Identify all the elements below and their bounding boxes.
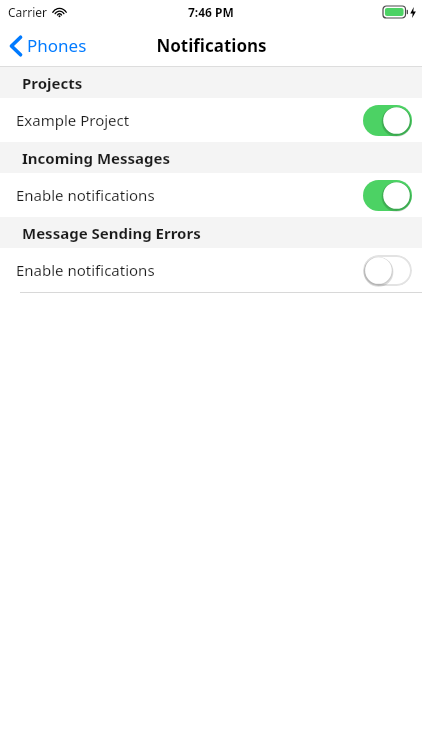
staticText: Incoming Messages bbox=[22, 148, 171, 168]
staticText: Example Project bbox=[16, 110, 130, 130]
button[interactable]: Toggle on bbox=[363, 180, 412, 211]
staticText: Notifications bbox=[156, 34, 267, 57]
staticText: 7:46 PM bbox=[188, 4, 234, 20]
button[interactable]: Enable notifications bbox=[0, 173, 422, 217]
staticText: Carrier bbox=[8, 4, 48, 20]
staticText: Enable notifications bbox=[16, 185, 155, 205]
staticText: Projects bbox=[22, 73, 83, 93]
staticText: Message Sending Errors bbox=[22, 223, 201, 243]
button[interactable]: Toggle off bbox=[363, 255, 412, 286]
staticText: Phones bbox=[27, 34, 87, 57]
staticText: Enable notifications bbox=[16, 260, 155, 280]
button[interactable]: Enable notifications bbox=[0, 248, 422, 292]
other: Back bbox=[10, 36, 22, 56]
button[interactable]: Back bbox=[0, 30, 97, 61]
button[interactable]: Toggle on bbox=[363, 105, 412, 136]
button[interactable]: Example Project bbox=[0, 98, 422, 142]
